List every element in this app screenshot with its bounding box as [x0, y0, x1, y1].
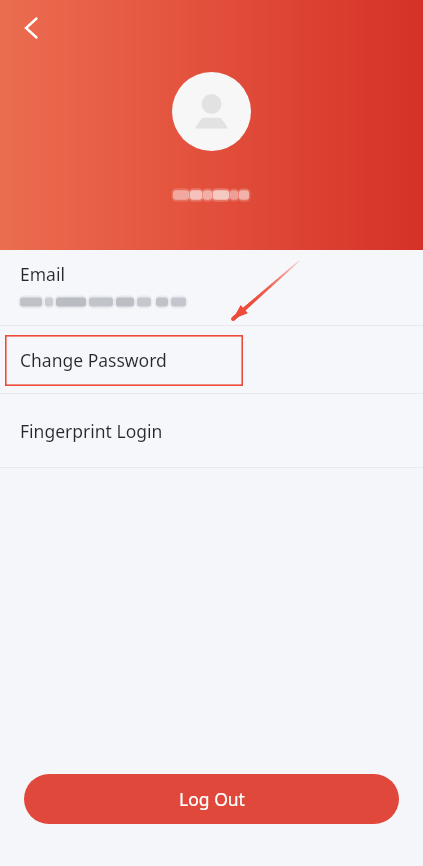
button[interactable]: Log Out: [24, 774, 399, 824]
button[interactable]: Change Password: [0, 326, 423, 393]
button[interactable]: Email: [0, 250, 423, 325]
button[interactable]: Fingerprint Login: [0, 394, 423, 467]
button[interactable]: Back: [8, 6, 52, 50]
staticText: Fingerprint Login: [20, 419, 163, 443]
staticText: Email: [20, 262, 65, 286]
staticText: Log Out: [179, 787, 245, 811]
staticText: Change Password: [20, 348, 167, 372]
